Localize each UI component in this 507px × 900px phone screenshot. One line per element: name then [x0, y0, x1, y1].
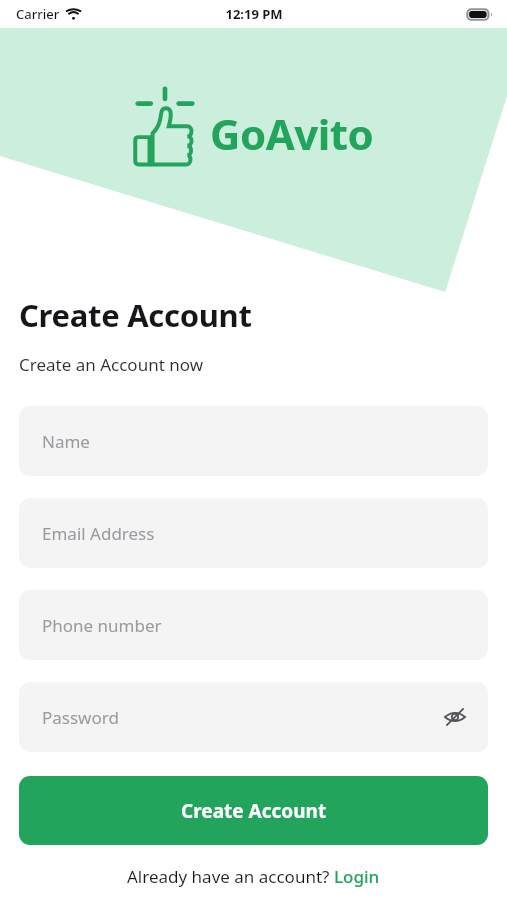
button[interactable]: Name [19, 406, 488, 476]
staticText: Login [334, 865, 380, 888]
staticText: Phone number [42, 614, 162, 637]
staticText: Password [42, 706, 119, 729]
button[interactable]: Phone number [19, 590, 488, 660]
staticText: Create Account [181, 798, 327, 824]
button[interactable]: Email Address [19, 498, 488, 568]
staticText: GoAvito [210, 105, 374, 162]
staticText: Create an Account now [19, 353, 204, 376]
button[interactable]: Password [19, 682, 488, 752]
button[interactable]: Create Account [19, 776, 488, 845]
staticText: Create Account [19, 294, 252, 336]
staticText: Already have an account? [127, 865, 334, 888]
staticText: Email Address [42, 522, 155, 545]
staticText: Carrier [16, 5, 60, 23]
button[interactable]: Toggle password visibility [437, 699, 473, 735]
staticText: 12:19 PM [225, 5, 283, 23]
button[interactable]: Login [334, 865, 380, 888]
staticText: Name [42, 430, 90, 453]
